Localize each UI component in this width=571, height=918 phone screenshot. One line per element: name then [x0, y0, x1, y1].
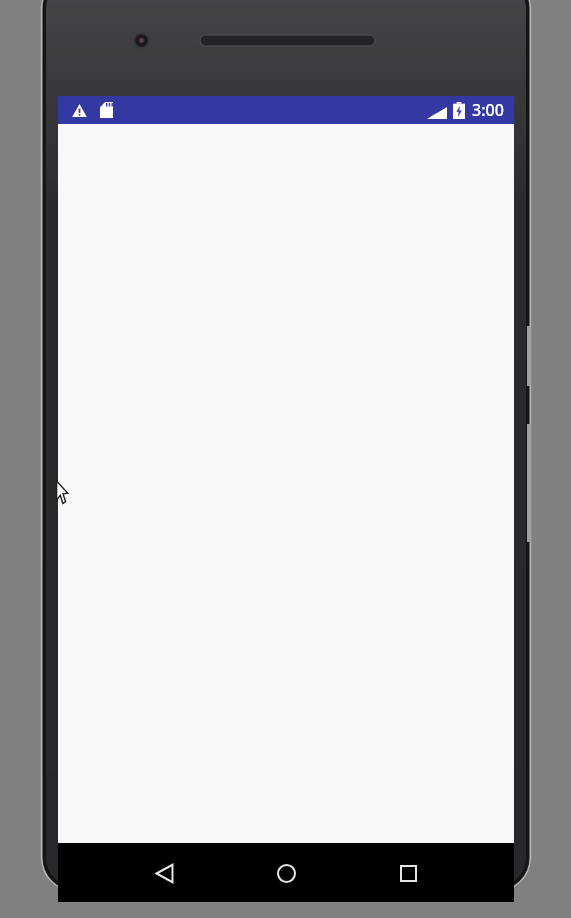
staticText: 3:00	[472, 99, 504, 121]
button[interactable]: Back	[136, 845, 192, 901]
button[interactable]: Recent apps	[380, 845, 436, 901]
button[interactable]: Home	[258, 845, 314, 901]
